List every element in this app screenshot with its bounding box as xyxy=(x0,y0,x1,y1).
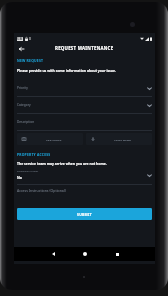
staticText: Description xyxy=(17,120,35,124)
staticText: Category xyxy=(17,103,31,107)
button[interactable]: Description xyxy=(17,114,152,131)
button[interactable]: ADD PHOTO xyxy=(17,133,83,145)
button[interactable]: Recents xyxy=(111,248,123,260)
staticText: The service team may arrive when you are… xyxy=(17,161,107,166)
staticText: Access Instructions (Optional) xyxy=(17,188,66,193)
staticText: SUBMIT xyxy=(77,212,92,217)
button[interactable]: Home xyxy=(79,248,91,260)
staticText: 0 xyxy=(29,37,31,41)
staticText: REQUEST MAINTENANCE xyxy=(55,45,114,51)
staticText: Please provide us with some information … xyxy=(17,68,117,73)
button[interactable]: Category xyxy=(17,97,152,114)
staticText: ADD PHOTO xyxy=(46,138,62,141)
button[interactable]: Back xyxy=(47,248,59,260)
staticText: Priority xyxy=(17,86,28,90)
button[interactable]: Back xyxy=(16,43,27,54)
staticText: NEW REQUEST xyxy=(17,58,44,63)
staticText: SIM xyxy=(17,37,23,41)
staticText: Permission to Enter xyxy=(17,170,39,173)
staticText: PROPERTY ACCESS xyxy=(17,152,51,157)
button[interactable]: SUBMIT xyxy=(17,208,152,220)
button[interactable]: VOICE MEMO xyxy=(86,133,152,145)
staticText: No xyxy=(17,175,22,180)
button[interactable]: Priority xyxy=(17,80,152,97)
staticText: VOICE MEMO xyxy=(114,138,132,141)
